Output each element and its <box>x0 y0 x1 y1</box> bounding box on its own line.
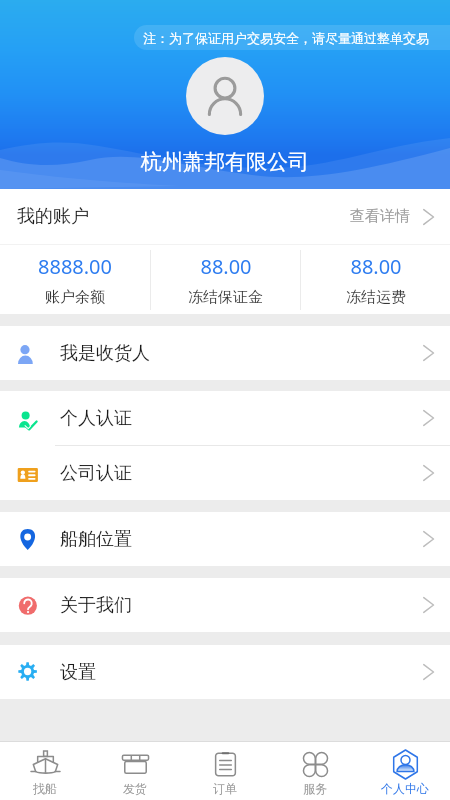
button[interactable]: 设置 <box>0 645 450 699</box>
staticText: 发货 <box>123 781 147 796</box>
button[interactable]: 个人认证 <box>0 391 450 445</box>
button[interactable]: 船舶位置 <box>0 512 450 566</box>
staticText: 找船 <box>33 781 57 796</box>
staticText: 我的账户 <box>17 205 89 228</box>
staticText: 个人中心 <box>381 781 429 796</box>
staticText: 我是收货人 <box>60 342 150 365</box>
staticText: 查看详情 <box>350 207 410 226</box>
staticText: 杭州萧邦有限公司 <box>141 149 309 175</box>
staticText: 关于我们 <box>60 594 132 617</box>
staticText: 设置 <box>60 661 96 684</box>
staticText: 公司认证 <box>60 462 132 485</box>
staticText: 8888.00 <box>38 253 112 280</box>
button[interactable]: 关于我们 <box>0 578 450 632</box>
staticText: 账户余额 <box>45 288 105 307</box>
staticText: 冻结运费 <box>346 288 406 307</box>
button[interactable]: 个人中心 <box>360 742 450 800</box>
button[interactable]: 订单 <box>180 742 270 800</box>
staticText: 88.00 <box>200 253 252 280</box>
staticText: 订单 <box>213 781 237 796</box>
staticText: 服务 <box>303 781 327 796</box>
button[interactable]: 发货 <box>90 742 180 800</box>
button[interactable]: 服务 <box>270 742 360 800</box>
staticText: 冻结保证金 <box>188 288 263 307</box>
button[interactable]: 我的账户 <box>0 189 450 244</box>
button[interactable]: 我是收货人 <box>0 326 450 380</box>
staticText: 个人认证 <box>60 407 132 430</box>
button[interactable]: 找船 <box>0 742 90 800</box>
button[interactable]: 公司认证 <box>0 446 450 500</box>
staticText: 88.00 <box>350 253 402 280</box>
staticText: 船舶位置 <box>60 528 132 551</box>
staticText: 注：为了保证用户交易安全，请尽量通过整单交易 <box>143 30 429 46</box>
button[interactable]: 注：为了保证用户交易安全，请尽量通过整单交易 <box>134 25 450 50</box>
